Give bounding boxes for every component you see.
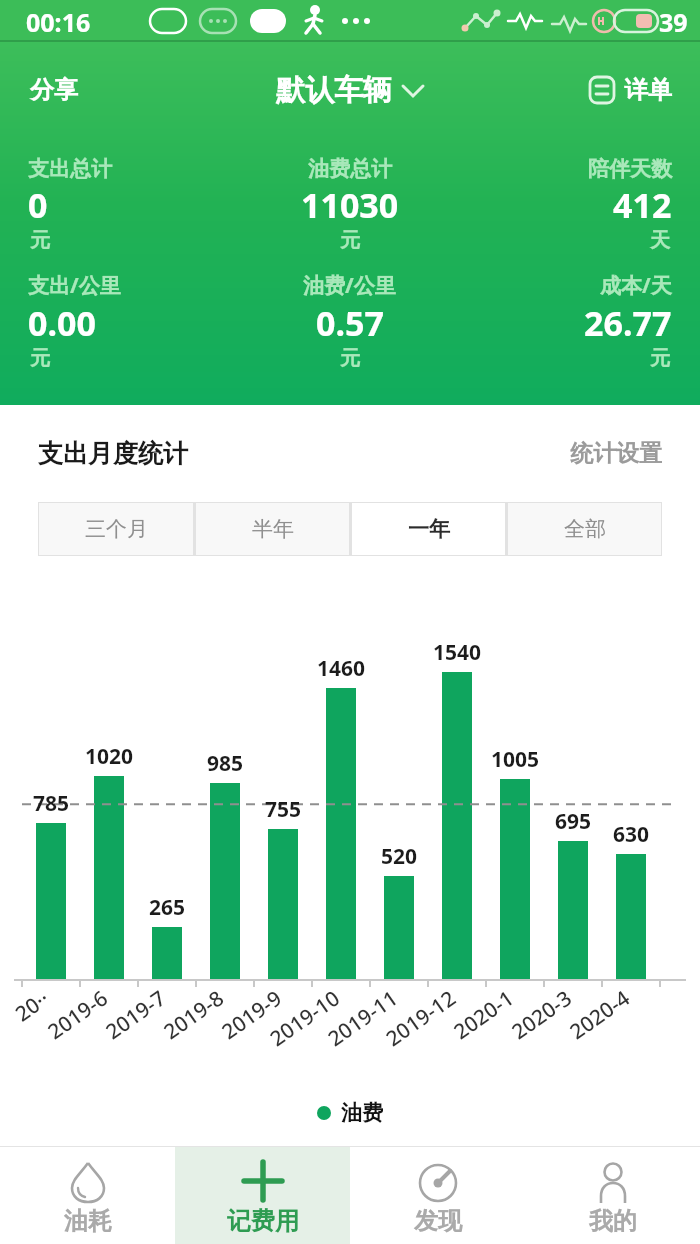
button[interactable]: 我的 xyxy=(525,1147,700,1244)
staticText: 0.57 xyxy=(316,300,384,346)
staticText: 2019-9 xyxy=(216,984,286,1043)
staticText: 0.00 xyxy=(28,300,96,346)
button[interactable]: 默认车辆 xyxy=(276,72,424,109)
staticText: 元 xyxy=(30,228,50,253)
staticText: 支出总计 xyxy=(28,156,112,182)
staticText: 油费总计 xyxy=(308,156,392,182)
button[interactable]: 油耗 xyxy=(0,1147,175,1244)
staticText: 26.77 xyxy=(584,300,672,346)
staticText: 2020-4 xyxy=(564,984,634,1043)
staticText: 2019-6 xyxy=(42,984,112,1043)
staticText: 520 xyxy=(359,842,439,871)
staticText: 1005 xyxy=(475,745,555,774)
staticText: 元 xyxy=(30,346,50,371)
staticText: 0 xyxy=(28,182,48,228)
button[interactable]: 发现 xyxy=(350,1147,525,1244)
staticText: 2019-7 xyxy=(100,984,170,1043)
staticText: 全部 xyxy=(564,516,606,542)
staticText: 元 xyxy=(650,346,670,371)
staticText: 天 xyxy=(650,228,670,253)
staticText: 油费/公里 xyxy=(303,271,396,300)
staticText: 2019-10 xyxy=(264,984,344,1050)
staticText: 20·· xyxy=(9,984,54,1026)
staticText: 一年 xyxy=(408,516,450,542)
button[interactable]: 三个月 xyxy=(38,502,194,556)
staticText: 985 xyxy=(185,749,265,778)
staticText: 半年 xyxy=(252,516,294,542)
staticText: 2019-12 xyxy=(380,984,460,1050)
staticText: 39 xyxy=(659,5,688,39)
staticText: 默认车辆 xyxy=(276,72,392,109)
staticText: 元 xyxy=(340,346,360,371)
staticText: 265 xyxy=(127,893,207,922)
staticText: 2020-3 xyxy=(506,984,576,1043)
staticText: 详单 xyxy=(624,75,672,105)
staticText: 元 xyxy=(340,228,360,253)
button[interactable]: 详单 xyxy=(588,75,672,105)
button[interactable]: 分享 xyxy=(30,75,78,105)
button[interactable]: 半年 xyxy=(195,502,350,556)
staticText: 支出/公里 xyxy=(28,271,121,300)
staticText: 支出月度统计 xyxy=(38,438,188,469)
staticText: 油费 xyxy=(341,1100,383,1126)
staticText: 记费用 xyxy=(227,1206,299,1236)
staticText: 我的 xyxy=(589,1206,637,1236)
staticText: 2020-1 xyxy=(448,984,518,1043)
staticText: 1460 xyxy=(301,654,381,683)
staticText: 755 xyxy=(243,795,323,824)
staticText: 发现 xyxy=(414,1206,462,1236)
staticText: 三个月 xyxy=(85,516,148,542)
staticText: 630 xyxy=(591,820,671,849)
button[interactable]: 统计设置 xyxy=(570,439,662,468)
staticText: 成本/天 xyxy=(600,271,672,300)
staticText: 1020 xyxy=(69,742,149,771)
staticText: 00:16 xyxy=(26,5,91,39)
staticText: 2019-11 xyxy=(322,984,402,1050)
staticText: 1540 xyxy=(417,638,497,667)
staticText: 785 xyxy=(11,789,91,818)
button[interactable]: 记费用 xyxy=(175,1147,350,1244)
button[interactable]: 全部 xyxy=(507,502,662,556)
staticText: 2019-8 xyxy=(158,984,228,1043)
staticText: 油耗 xyxy=(64,1206,112,1236)
staticText: 陪伴天数 xyxy=(588,156,672,182)
button[interactable]: 一年 xyxy=(351,502,506,556)
staticText: 695 xyxy=(533,807,613,836)
staticText: 11030 xyxy=(301,182,399,228)
staticText: 412 xyxy=(613,182,672,228)
